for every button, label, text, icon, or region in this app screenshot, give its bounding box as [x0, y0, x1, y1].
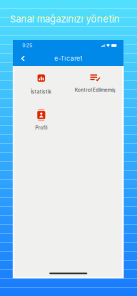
button[interactable]: Kontrol Edilmemiş	[68, 74, 122, 96]
staticText: e-Ticaret	[54, 55, 82, 62]
staticText: Kontrol Edilmemiş	[75, 87, 116, 93]
staticText: 9:25	[22, 43, 32, 48]
button[interactable]: Profil	[14, 108, 68, 130]
staticText: Sanal mağazınızı yönetin	[10, 13, 120, 25]
button[interactable]: Back	[16, 51, 29, 65]
button[interactable]: İstatistik	[14, 74, 68, 96]
staticText: İstatistik	[31, 89, 52, 95]
staticText: Profil	[35, 125, 47, 131]
